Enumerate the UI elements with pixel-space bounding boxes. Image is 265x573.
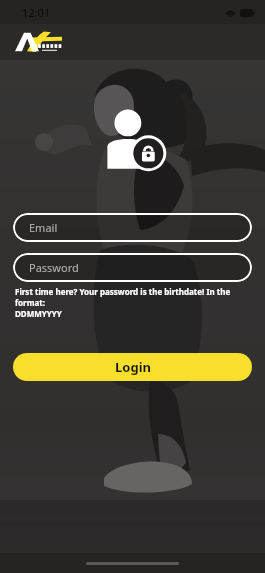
staticText: First time here? Your password is the bi… xyxy=(15,286,252,319)
button[interactable]: Email xyxy=(13,213,252,242)
button[interactable]: Login xyxy=(13,353,252,381)
staticText: Email xyxy=(29,220,58,235)
button[interactable]: Password xyxy=(13,253,252,282)
other: Account locked xyxy=(101,108,165,170)
staticText: Password xyxy=(29,260,79,275)
button[interactable]: A Fitness logo xyxy=(14,31,64,53)
staticText: Login xyxy=(115,358,151,376)
staticText: 12:01 xyxy=(22,5,51,20)
